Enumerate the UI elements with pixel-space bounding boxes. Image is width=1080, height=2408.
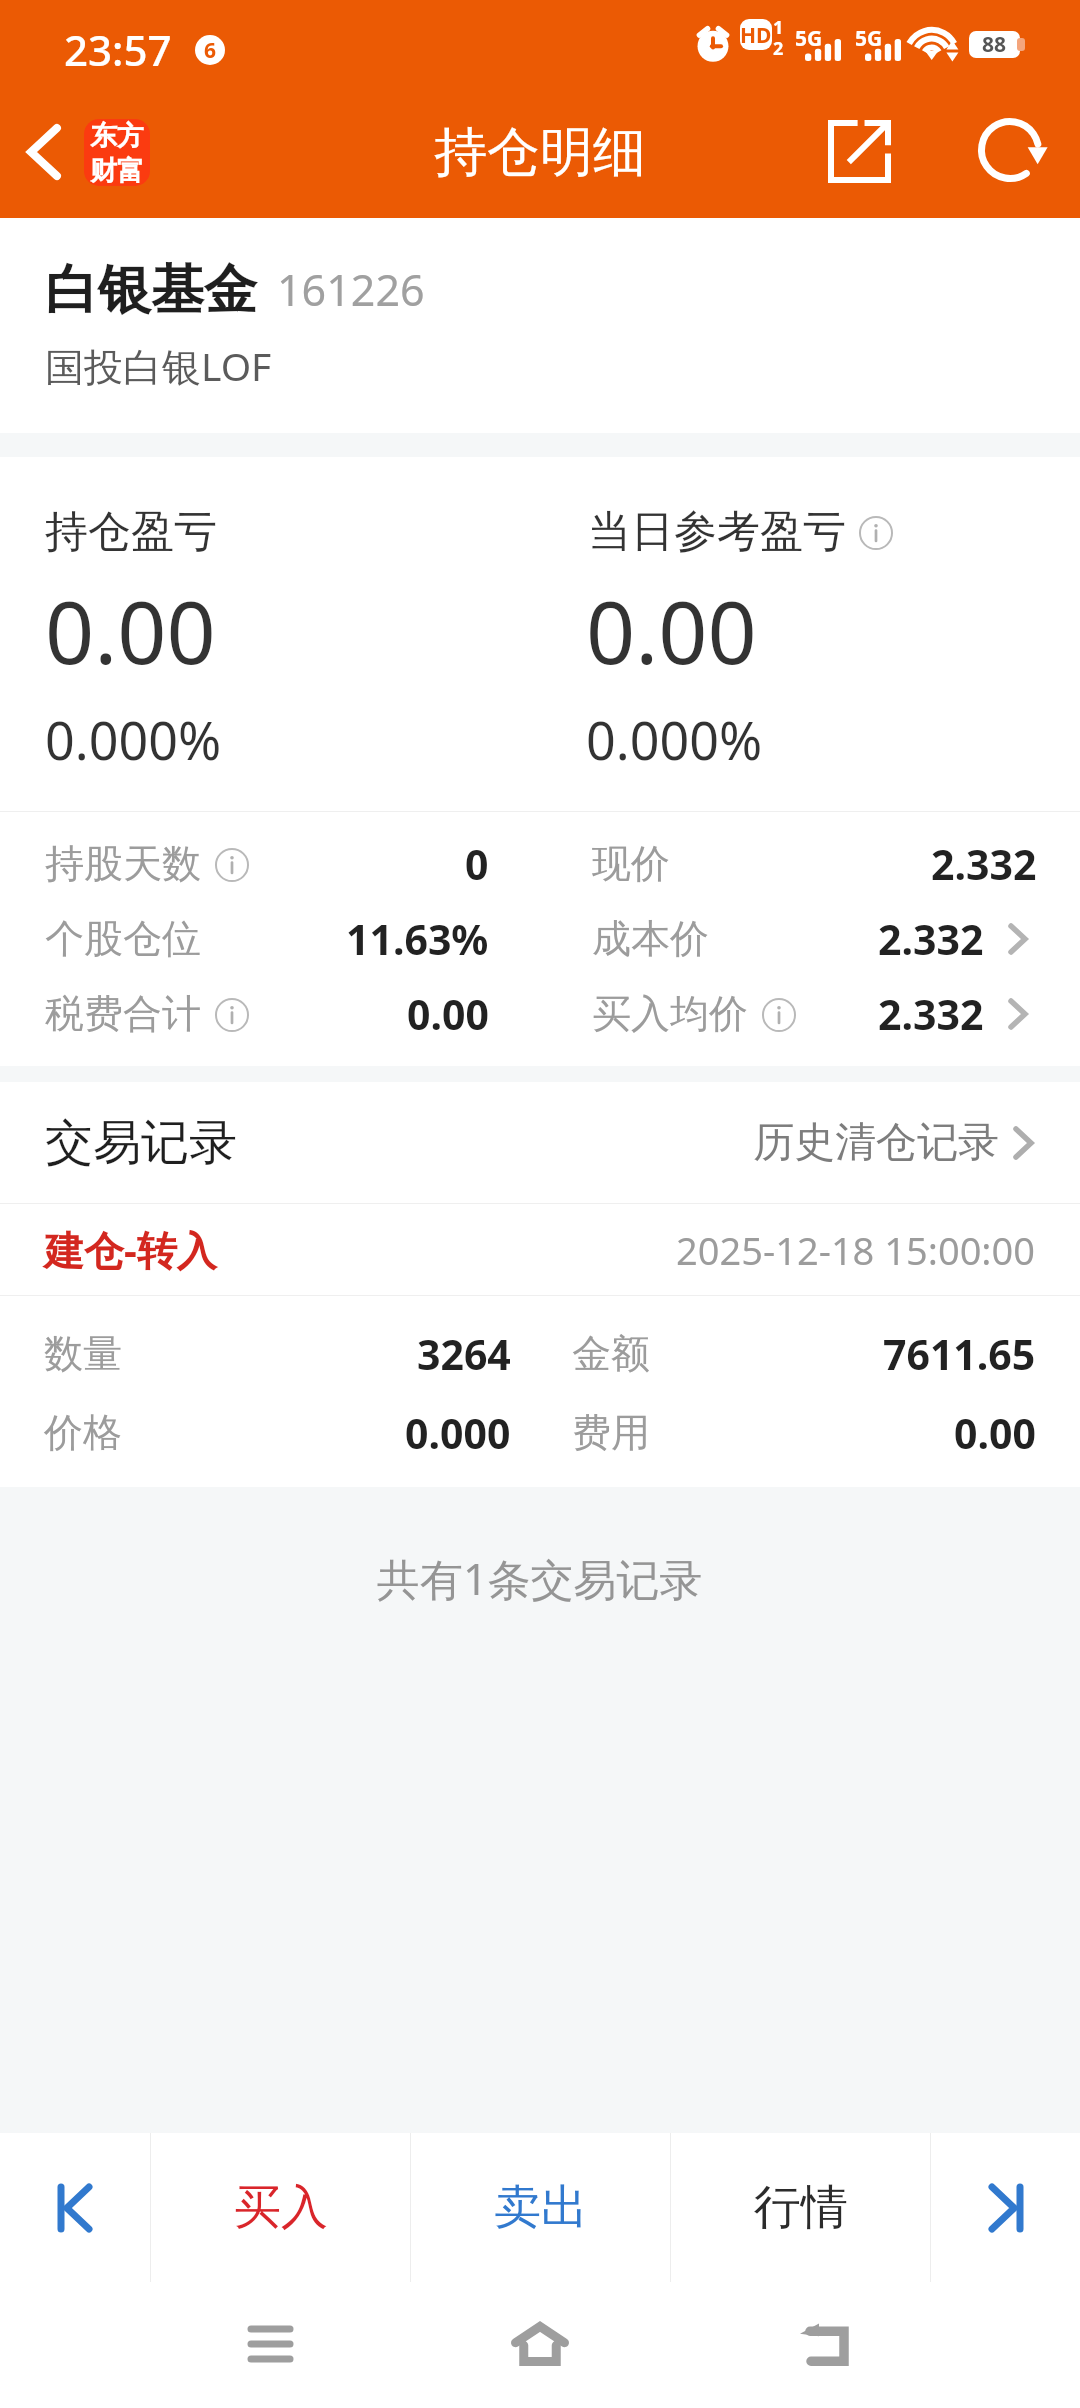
- staticText: 东方: [90, 119, 144, 153]
- staticText: 23:57: [64, 21, 172, 78]
- staticText: 行情: [754, 2178, 848, 2237]
- button[interactable]: Home: [470, 2282, 610, 2408]
- staticText: 数量: [44, 1329, 122, 1378]
- staticText: 0: [465, 836, 489, 892]
- button[interactable]: Refresh: [948, 100, 1072, 218]
- button[interactable]: Back: [0, 100, 88, 218]
- staticText: 税费合计: [45, 989, 201, 1038]
- staticText: 交易记录: [45, 1113, 237, 1173]
- staticText: 买入均价: [592, 989, 748, 1038]
- staticText: 财富: [90, 154, 144, 186]
- staticText: 0.000%: [586, 704, 763, 775]
- staticText: 2: [773, 36, 784, 61]
- staticText: 持仓明细: [434, 119, 646, 186]
- staticText: 成本价: [592, 914, 709, 963]
- staticText: 当日参考盈亏: [588, 505, 846, 559]
- staticText: 2025-12-18 15:00:00: [676, 1224, 1036, 1276]
- staticText: 0.00: [407, 986, 489, 1042]
- staticText: 88: [982, 31, 1007, 57]
- button[interactable]: 买入: [151, 2133, 410, 2282]
- staticText: 7611.65: [883, 1326, 1036, 1382]
- button[interactable]: 历史清仓记录: [753, 1117, 1034, 1169]
- button[interactable]: Recents: [200, 2282, 340, 2408]
- staticText: 共有1条交易记录: [377, 1549, 703, 1608]
- staticText: 5G: [855, 24, 883, 53]
- staticText: 现价: [592, 839, 670, 888]
- staticText: 持股天数: [45, 839, 201, 888]
- staticText: 0.000: [405, 1405, 511, 1461]
- button[interactable]: [931, 2133, 1080, 2282]
- staticText: 0.00: [45, 572, 216, 689]
- staticText: 费用: [572, 1408, 650, 1457]
- button[interactable]: Share: [797, 100, 921, 218]
- staticText: 个股仓位: [45, 914, 201, 963]
- staticText: 买入: [234, 2178, 328, 2237]
- staticText: 1: [773, 15, 784, 40]
- button[interactable]: 卖出: [411, 2133, 670, 2282]
- staticText: 161226: [277, 260, 425, 319]
- staticText: 0.00: [954, 1405, 1036, 1461]
- staticText: 国投白银LOF: [45, 339, 272, 392]
- staticText: 卖出: [494, 2178, 588, 2237]
- staticText: 白银基金: [45, 257, 257, 324]
- staticText: 建仓-转入: [44, 1222, 217, 1277]
- staticText: 5G: [795, 24, 823, 53]
- staticText: 价格: [44, 1408, 122, 1457]
- button[interactable]: [0, 2133, 150, 2282]
- staticText: 6: [204, 36, 217, 65]
- staticText: 持仓盈亏: [45, 505, 217, 559]
- staticText: 0.000%: [45, 704, 222, 775]
- staticText: 2.332: [931, 836, 1037, 892]
- button[interactable]: East Money logo: [84, 119, 150, 186]
- staticText: 3264: [417, 1326, 511, 1382]
- staticText: 11.63%: [346, 911, 489, 967]
- staticText: HD: [740, 21, 772, 50]
- staticText: 2.332: [878, 986, 984, 1042]
- button[interactable]: 行情: [671, 2133, 930, 2282]
- staticText: 0.00: [586, 572, 757, 689]
- staticText: 历史清仓记录: [753, 1117, 999, 1169]
- staticText: 金额: [572, 1329, 650, 1378]
- button[interactable]: Back: [754, 2282, 894, 2408]
- staticText: 2.332: [878, 911, 984, 967]
